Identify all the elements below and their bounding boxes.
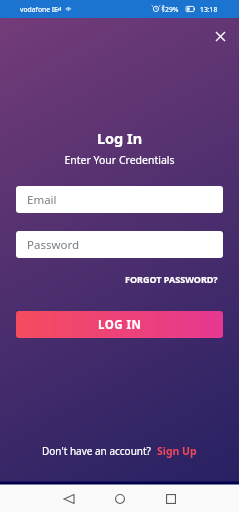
staticText: Enter Your Credentials — [0, 153, 239, 167]
staticText: LOG IN — [98, 317, 142, 333]
button[interactable]: Recents — [158, 486, 183, 511]
staticText: Don't have an account? — [42, 444, 151, 458]
staticText: Password — [27, 237, 80, 253]
staticText: Log In — [0, 128, 239, 148]
staticText: vodafone IE — [20, 5, 58, 14]
button[interactable]: Home — [107, 486, 132, 511]
staticText: Sign Up — [157, 444, 197, 458]
staticText: Email — [27, 192, 57, 208]
button[interactable]: Close — [208, 24, 233, 49]
button[interactable]: Back — [56, 486, 81, 511]
button[interactable]: Email — [16, 186, 223, 213]
button[interactable]: LOG IN — [16, 311, 223, 338]
staticText: 13:18 — [200, 5, 218, 14]
button[interactable]: Password — [16, 231, 223, 258]
staticText: FORGOT PASSWORD? — [125, 273, 218, 285]
button[interactable]: FORGOT PASSWORD? — [115, 271, 218, 287]
button[interactable]: Sign Up — [157, 444, 197, 458]
staticText: 29% — [165, 5, 179, 14]
